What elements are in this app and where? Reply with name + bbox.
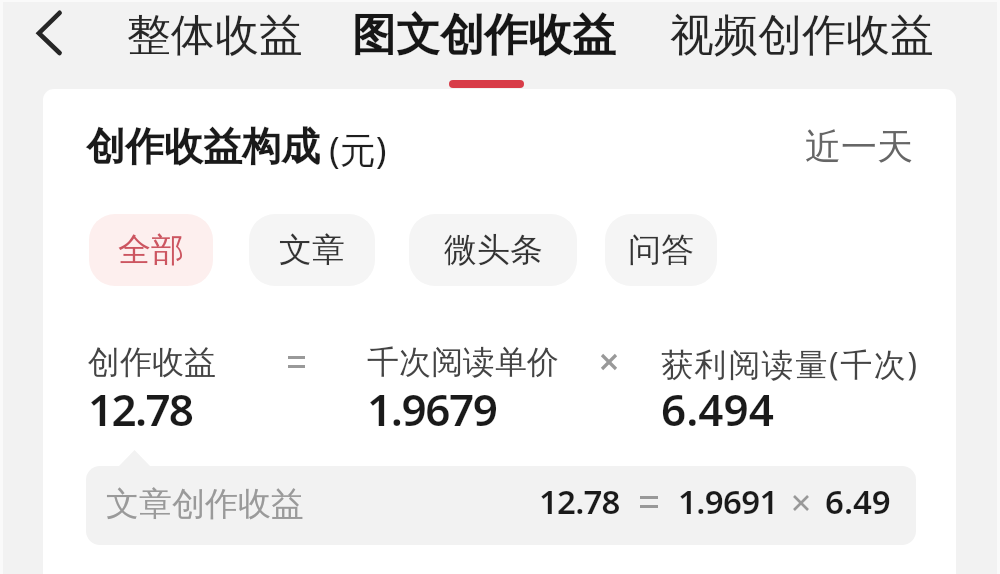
staticText: 6.494 — [661, 379, 774, 439]
staticText: 图文创作收益 — [352, 8, 616, 63]
staticText: 12.78 — [539, 479, 620, 524]
button[interactable]: 全部 — [89, 214, 213, 286]
staticText: 创作收益构成 — [86, 122, 320, 171]
button[interactable]: 整体收益 — [115, 0, 315, 75]
staticText: 问答 — [628, 229, 694, 271]
staticText: 6.49 — [825, 479, 891, 524]
staticText: 文章 — [279, 229, 345, 271]
button[interactable]: 微头条 — [409, 214, 577, 286]
button[interactable]: 视频创作收益 — [658, 0, 946, 75]
staticText: 文章创作收益 — [106, 483, 304, 525]
staticText: 近一天 — [805, 124, 913, 169]
staticText: (元) — [329, 125, 387, 174]
staticText: 获利阅读量(千次) — [661, 342, 919, 386]
staticText: 视频创作收益 — [670, 8, 934, 63]
button[interactable]: 近一天 — [793, 112, 925, 181]
button[interactable]: 文章 — [249, 214, 375, 286]
staticText: 1.9691 — [678, 479, 778, 524]
button[interactable]: 文章创作收益 — [86, 466, 916, 545]
button[interactable]: Back — [9, 0, 89, 66]
staticText: 1.9679 — [367, 379, 497, 439]
button[interactable]: 问答 — [605, 214, 717, 286]
button[interactable]: 图文创作收益 — [340, 0, 628, 75]
staticText: 全部 — [118, 229, 184, 271]
staticText: 整体收益 — [127, 8, 303, 63]
staticText: 12.78 — [88, 379, 193, 439]
staticText: 千次阅读单价 — [367, 342, 559, 382]
staticText: 微头条 — [444, 229, 543, 271]
staticText: 创作收益 — [88, 342, 216, 382]
